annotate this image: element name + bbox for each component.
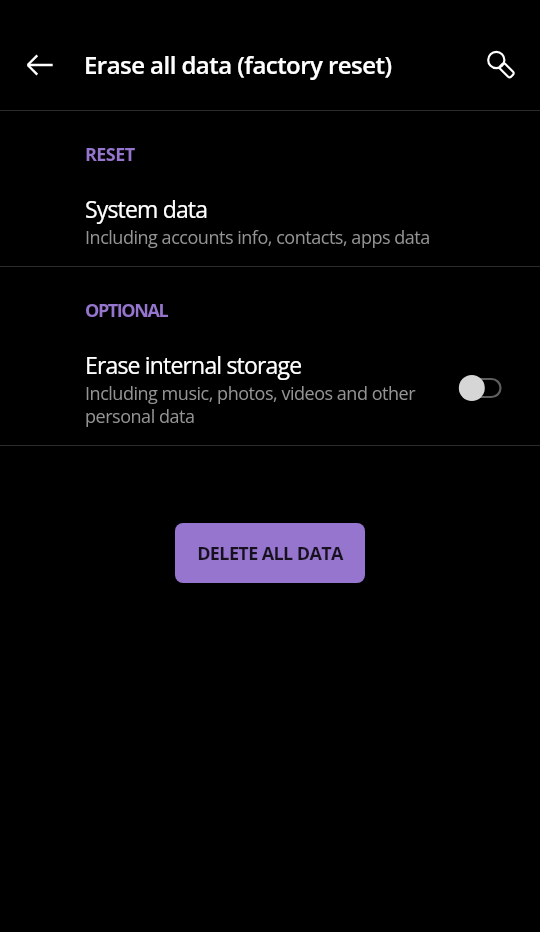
button[interactable]: DELETE ALL DATA: [175, 523, 365, 583]
staticText: Erase internal storage: [85, 349, 302, 380]
button: Navigate back: [0, 0, 540, 110]
staticText: Including music, photos, videos and othe…: [85, 381, 416, 428]
button[interactable]: OPTIONAL: [0, 267, 540, 445]
staticText: Including accounts info, contacts, apps …: [85, 225, 430, 250]
staticText: DELETE ALL DATA: [197, 541, 343, 566]
button[interactable]: Erase internal storage toggle, off: [443, 366, 517, 410]
button[interactable]: Search: [472, 36, 520, 84]
staticText: RESET: [85, 142, 135, 167]
staticText: System data: [85, 193, 208, 224]
staticText: OPTIONAL: [85, 298, 168, 323]
button[interactable]: Navigate back: [16, 41, 64, 89]
button[interactable]: RESET: [0, 111, 540, 266]
staticText: Erase all data (factory reset): [84, 48, 392, 81]
